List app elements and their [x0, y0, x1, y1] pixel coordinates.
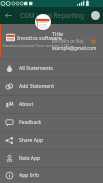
button[interactable]: All Statements — [0, 60, 103, 77]
button[interactable]: App Info — [0, 168, 103, 183]
button[interactable]: Add Statement — [0, 78, 103, 95]
button[interactable]: Share App — [0, 132, 103, 149]
staticText: Feedback — [19, 119, 42, 126]
staticText: CGM Level Reporting Schedule — [20, 11, 99, 20]
staticText: All Statements — [19, 65, 53, 72]
staticText: Add Statement — [19, 83, 55, 90]
button[interactable]: Rate App — [0, 150, 103, 167]
staticText: Innotics Licence Free version 1.00 — [3, 43, 69, 49]
button[interactable]: Feedback — [0, 114, 103, 131]
staticText: Share App — [19, 137, 44, 144]
staticText: (Mr/Mrs or No) — [52, 38, 84, 44]
staticText: Innotics software — [17, 34, 62, 41]
staticText: About — [19, 101, 34, 108]
button[interactable]: Back — [0, 7, 16, 24]
button[interactable]: About — [0, 96, 103, 113]
staticText: Rate App — [19, 155, 41, 162]
button[interactable]: Account — [89, 9, 101, 21]
staticText: Title — [52, 30, 63, 37]
staticText: App Info — [19, 172, 40, 179]
staticText: example@gmail.com — [52, 45, 97, 51]
